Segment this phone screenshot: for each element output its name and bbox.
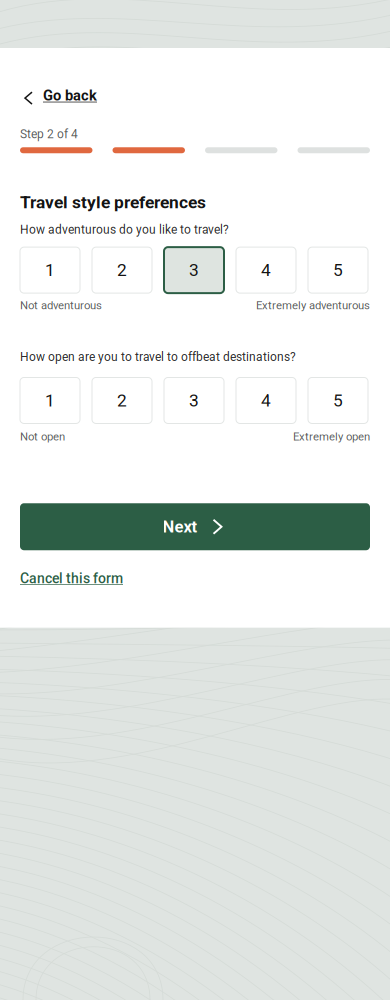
staticText: 5 xyxy=(333,390,343,411)
button[interactable]: 5 xyxy=(308,247,368,293)
button[interactable]: Next xyxy=(20,503,370,550)
button[interactable]: 1 xyxy=(20,377,80,423)
staticText: 1 xyxy=(45,390,55,411)
staticText: 3 xyxy=(189,390,199,411)
button[interactable]: Cancel this form xyxy=(20,570,123,587)
button[interactable]: 3 xyxy=(164,377,224,423)
staticText: How adventurous do you like to travel? xyxy=(20,223,229,237)
button[interactable]: 5 xyxy=(308,377,368,423)
staticText: 4 xyxy=(261,260,271,280)
staticText: Not open xyxy=(20,430,65,443)
staticText: Extremely open xyxy=(293,430,370,443)
staticText: 3 xyxy=(189,260,199,280)
staticText: Not adventurous xyxy=(20,299,102,312)
button[interactable]: 4 xyxy=(236,247,296,293)
button[interactable]: 4 xyxy=(236,377,296,423)
staticText: Extremely adventurous xyxy=(256,299,370,312)
staticText: 1 xyxy=(45,260,55,280)
button[interactable]: 3 xyxy=(164,247,224,293)
staticText: Next xyxy=(162,517,197,536)
button[interactable]: 2 xyxy=(92,377,152,423)
button[interactable]: Go back xyxy=(20,87,97,104)
staticText: How open are you to travel to offbeat de… xyxy=(20,350,296,364)
staticText: Cancel this form xyxy=(20,570,123,587)
staticText: 4 xyxy=(261,390,271,411)
staticText: 2 xyxy=(117,260,127,280)
staticText: Go back xyxy=(43,87,97,104)
staticText: 2 xyxy=(117,390,127,411)
button[interactable]: 1 xyxy=(20,247,80,293)
staticText: Travel style preferences xyxy=(20,192,206,213)
staticText: Step 2 of 4 xyxy=(20,127,78,141)
button[interactable]: 2 xyxy=(92,247,152,293)
staticText: 5 xyxy=(333,260,343,280)
